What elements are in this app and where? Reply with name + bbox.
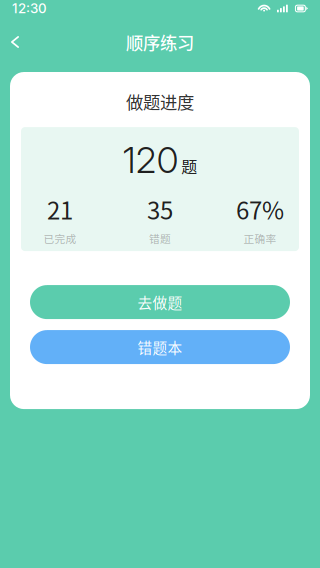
staticText: 120 bbox=[123, 138, 179, 182]
staticText: 错题 bbox=[149, 230, 171, 246]
staticText: 错题本 bbox=[137, 336, 182, 358]
button[interactable]: 错题本 bbox=[30, 330, 290, 364]
button[interactable]: Back bbox=[0, 20, 30, 64]
staticText: 12:30 bbox=[12, 0, 47, 16]
staticText: 35 bbox=[147, 192, 173, 227]
staticText: 67% bbox=[236, 192, 284, 227]
staticText: 正确率 bbox=[243, 230, 276, 246]
staticText: 已完成 bbox=[43, 230, 76, 246]
staticText: 做题进度 bbox=[126, 89, 194, 114]
button[interactable]: 去做题 bbox=[30, 285, 290, 319]
staticText: 顺序练习 bbox=[126, 29, 194, 55]
staticText: 21 bbox=[47, 192, 73, 227]
staticText: 去做题 bbox=[137, 291, 182, 313]
staticText: 题 bbox=[181, 154, 197, 178]
